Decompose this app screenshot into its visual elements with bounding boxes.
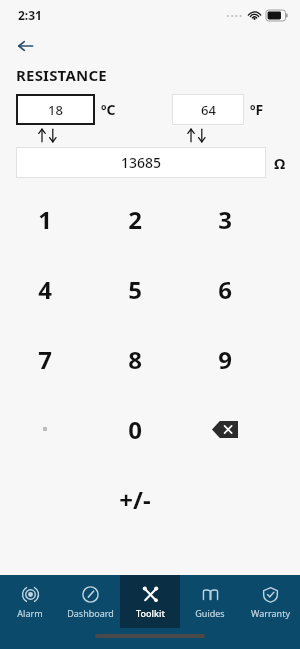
staticText: 5 [128,273,142,306]
staticText: +/- [119,483,151,516]
staticText: ºC [101,100,116,119]
button[interactable]: Backspace [180,394,270,464]
staticText: Warranty [251,607,290,619]
button[interactable]: Warranty [240,575,300,628]
button[interactable]: Swap Fahrenheit [182,128,212,143]
staticText: 9 [218,343,232,376]
button[interactable]: +/- [90,464,180,534]
button[interactable]: 64 [172,94,244,125]
button[interactable]: 5 [90,254,180,324]
staticText: 64 [201,101,216,119]
staticText: 6 [218,273,232,306]
staticText: 8 [128,343,142,376]
button[interactable]: Alarm [0,575,60,628]
button[interactable]: 4 [0,254,90,324]
button[interactable]: 6 [180,254,270,324]
staticText: 2 [128,203,142,236]
staticText: ºF [250,100,264,119]
staticText: 3 [218,203,232,236]
button[interactable]: 13685 [16,147,266,178]
staticText: 4 [38,273,52,306]
button[interactable]: 7 [0,324,90,394]
staticText: Alarm [17,607,43,619]
staticText: RESISTANCE [16,65,107,85]
staticText: 7 [38,343,52,376]
button[interactable]: Guides [180,575,240,628]
staticText: 2:31 [18,7,42,23]
staticText: Dashboard [67,607,114,619]
button[interactable]: Toolkit [120,575,180,628]
button[interactable]: 1 [0,184,90,254]
staticText: 18 [48,101,63,119]
button[interactable]: 18 [16,94,95,125]
button[interactable]: Back [8,30,42,62]
button[interactable]: Swap Celsius [33,128,63,143]
button[interactable]: 2 [90,184,180,254]
staticText: Ω [274,153,286,173]
button[interactable]: 8 [90,324,180,394]
staticText: Toolkit [136,607,165,619]
staticText: 13685 [121,153,162,172]
staticText: 1 [38,203,52,236]
button[interactable]: 3 [180,184,270,254]
button[interactable]: 9 [180,324,270,394]
staticText: 0 [128,413,142,446]
button[interactable]: 0 [90,394,180,464]
button[interactable]: Dashboard [60,575,120,628]
staticText: Guides [195,607,225,619]
